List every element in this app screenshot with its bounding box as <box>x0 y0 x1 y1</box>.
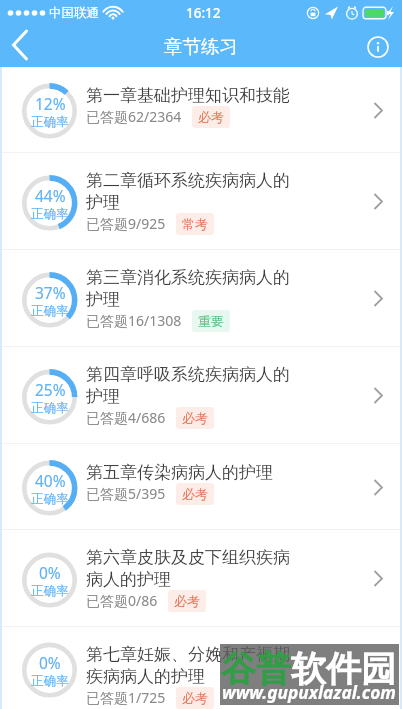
staticText: 正确率 <box>31 673 69 689</box>
staticText: 必考 <box>198 109 224 125</box>
button[interactable]: 25% <box>0 347 402 443</box>
staticText: 必考 <box>182 410 208 426</box>
button[interactable]: Back <box>0 26 42 67</box>
staticText: 必考 <box>182 486 208 502</box>
button[interactable]: 0% <box>0 530 402 626</box>
staticText: 已答题5/395 <box>86 484 166 503</box>
staticText: 第五章传染病病人的护理 <box>86 462 273 483</box>
staticText: 正确率 <box>31 400 69 416</box>
button[interactable]: 0% <box>0 627 402 709</box>
staticText: 已答题0/86 <box>86 591 158 610</box>
staticText: 16:12 <box>186 4 221 22</box>
staticText: 正确率 <box>31 491 69 507</box>
staticText: 正确率 <box>31 583 69 599</box>
staticText: 已答题16/1308 <box>86 311 182 330</box>
staticText: 12% <box>35 93 66 114</box>
staticText: 已答题62/2364 <box>86 107 182 126</box>
button[interactable]: Info <box>354 26 402 67</box>
staticText: 常考 <box>182 216 208 232</box>
staticText: 正确率 <box>31 303 69 319</box>
staticText: 中国联通 <box>49 5 99 21</box>
staticText: 第七章妊娠、分娩和产褥期疾病病人的护理 <box>86 644 300 687</box>
staticText: 必考 <box>182 690 208 706</box>
staticText: www.gupuxlazal.com <box>222 681 396 705</box>
staticText: 25% <box>35 379 66 400</box>
staticText: 软件园 <box>291 647 396 691</box>
staticText: 已答题1/725 <box>86 688 166 707</box>
staticText: 第六章皮肤及皮下组织疾病病人的护理 <box>86 547 300 590</box>
staticText: 44% <box>35 185 66 206</box>
button[interactable]: 37% <box>0 250 402 346</box>
staticText: 已答题9/925 <box>86 214 166 233</box>
staticText: 已答题4/686 <box>86 408 166 427</box>
staticText: 重要 <box>198 313 224 329</box>
staticText: 第二章循环系统疾病病人的护理 <box>86 170 300 213</box>
button[interactable]: 12% <box>0 67 402 152</box>
staticText: 必考 <box>174 593 200 609</box>
staticText: 0% <box>39 562 61 583</box>
staticText: 第一章基础护理知识和技能 <box>86 85 290 106</box>
staticText: 37% <box>35 282 66 303</box>
staticText: 章节练习 <box>164 35 238 58</box>
button[interactable]: 40% <box>0 444 402 529</box>
staticText: 第四章呼吸系统疾病病人的护理 <box>86 364 300 407</box>
staticText: 正确率 <box>31 206 69 222</box>
button[interactable]: 44% <box>0 153 402 249</box>
staticText: 谷普 <box>221 647 291 691</box>
staticText: 40% <box>35 470 66 491</box>
staticText: 第三章消化系统疾病病人的护理 <box>86 267 300 310</box>
staticText: 正确率 <box>31 114 69 130</box>
staticText: 0% <box>39 652 61 673</box>
